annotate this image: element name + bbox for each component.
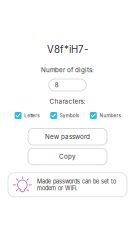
button[interactable]: Copy <box>28 148 107 165</box>
staticText: Number of digits: <box>41 66 94 74</box>
button[interactable]: New password <box>28 128 107 145</box>
staticText: Symbols <box>60 113 79 118</box>
staticText: V8f*iH7- <box>47 44 88 55</box>
staticText: 8 <box>55 81 59 89</box>
button[interactable]: Letters <box>15 112 39 119</box>
staticText: Copy <box>59 153 76 160</box>
staticText: Letters <box>24 113 39 118</box>
staticText: Characters: <box>49 98 85 105</box>
staticText: Numbers <box>99 113 120 118</box>
staticText: New password <box>45 133 90 141</box>
button[interactable]: Numbers <box>90 112 120 119</box>
staticText: Made passwords can be set to modem or Wi… <box>37 178 116 192</box>
button[interactable]: Symbols <box>50 112 79 119</box>
